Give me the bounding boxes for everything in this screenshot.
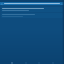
button[interactable]: [1, 13, 63, 18]
button[interactable]: Profile: [51, 61, 54, 64]
button[interactable]: [1, 7, 63, 12]
button[interactable]: Library: [37, 61, 40, 64]
button[interactable]: Home: [10, 61, 13, 64]
button[interactable]: Search: [24, 61, 27, 64]
button[interactable]: Navigate back: [1, 3, 3, 5]
button[interactable]: More options: [61, 3, 63, 5]
